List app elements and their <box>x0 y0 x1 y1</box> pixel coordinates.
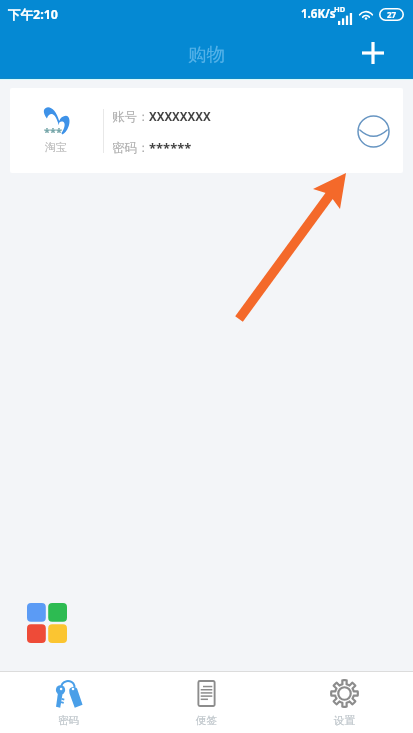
staticText: ****** <box>149 139 192 157</box>
staticText: 密码： <box>112 140 150 156</box>
staticText: *** <box>44 124 62 139</box>
staticText: 淘宝 <box>45 140 67 154</box>
button[interactable]: 密码 <box>0 672 137 733</box>
staticText: 下午2:10 <box>8 6 58 23</box>
staticText: 密码 <box>58 714 79 727</box>
staticText: 购物 <box>188 43 225 66</box>
button[interactable]: Apps <box>27 603 67 643</box>
button[interactable]: 便签 <box>137 672 275 733</box>
staticText: 账号： <box>112 109 150 125</box>
staticText: 27 <box>387 9 397 20</box>
staticText: HD <box>334 4 346 14</box>
staticText: XXXXXXXX <box>149 109 211 125</box>
button[interactable]: 设置 <box>275 672 413 733</box>
button[interactable]: Add <box>351 31 395 75</box>
button[interactable]: Expand <box>352 110 394 152</box>
staticText: 设置 <box>334 714 355 727</box>
staticText: 1.6K/s <box>301 6 336 22</box>
button[interactable]: *** <box>10 88 403 173</box>
staticText: 便签 <box>196 714 217 727</box>
